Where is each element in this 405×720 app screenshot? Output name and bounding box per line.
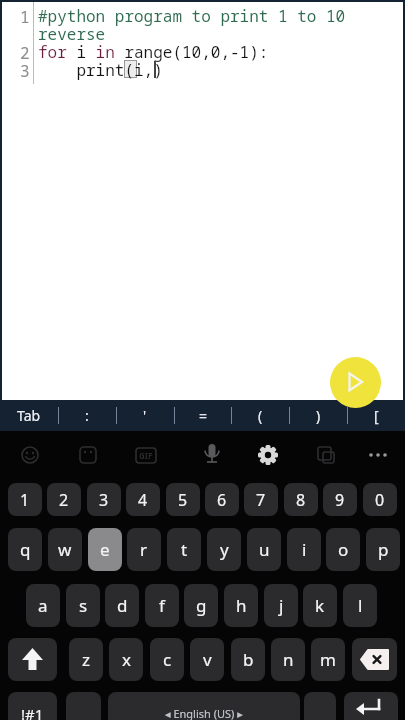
button[interactable] bbox=[364, 441, 392, 469]
button[interactable] bbox=[344, 692, 398, 720]
button[interactable]: 1 bbox=[0, 0, 405, 400]
button[interactable]: w bbox=[48, 528, 82, 571]
button[interactable]: x bbox=[109, 638, 143, 681]
staticText: 5 bbox=[178, 489, 188, 511]
staticText: r bbox=[140, 538, 148, 561]
staticText: b bbox=[243, 648, 254, 671]
button[interactable]: = bbox=[174, 400, 232, 431]
button[interactable]: : bbox=[58, 400, 116, 431]
button[interactable]: o bbox=[326, 528, 360, 571]
staticText: 7 bbox=[256, 489, 266, 511]
button[interactable]: i bbox=[287, 528, 321, 571]
button[interactable]: e bbox=[88, 528, 122, 571]
staticText: !#1 bbox=[21, 704, 44, 720]
staticText: f bbox=[159, 594, 165, 617]
button[interactable] bbox=[254, 441, 282, 469]
staticText: t bbox=[181, 538, 188, 561]
staticText: v bbox=[203, 648, 212, 671]
staticText: ◂ English (US) ▸ bbox=[165, 706, 243, 720]
staticText: print(i,) bbox=[38, 59, 163, 81]
staticText: 8 bbox=[296, 489, 306, 511]
button[interactable]: l bbox=[343, 584, 377, 627]
button[interactable]: f bbox=[145, 584, 179, 627]
staticText: l bbox=[358, 594, 363, 617]
button[interactable]: r bbox=[127, 528, 161, 571]
button[interactable]: ' bbox=[116, 400, 174, 431]
staticText: k bbox=[315, 594, 325, 617]
button[interactable]: h bbox=[224, 584, 258, 627]
staticText: m bbox=[320, 648, 336, 671]
button[interactable] bbox=[8, 638, 57, 681]
button[interactable]: s bbox=[66, 584, 100, 627]
button[interactable] bbox=[132, 441, 160, 469]
button[interactable]: 6 bbox=[205, 483, 239, 516]
button[interactable]: d bbox=[105, 584, 139, 627]
button[interactable] bbox=[16, 441, 44, 469]
staticText: 1 bbox=[20, 489, 30, 511]
button[interactable]: 7 bbox=[244, 483, 278, 516]
staticText: y bbox=[220, 538, 229, 561]
staticText: [ bbox=[374, 406, 379, 425]
button[interactable]: ) bbox=[289, 400, 347, 431]
staticText: ' bbox=[143, 406, 147, 425]
staticText: j bbox=[279, 594, 284, 617]
button[interactable] bbox=[304, 692, 336, 720]
button[interactable] bbox=[66, 692, 101, 720]
staticText: z bbox=[82, 648, 90, 671]
button[interactable]: z bbox=[69, 638, 103, 681]
staticText: 4 bbox=[138, 489, 148, 511]
button[interactable]: 1 bbox=[8, 483, 42, 516]
button[interactable]: v bbox=[190, 638, 224, 681]
button[interactable]: k bbox=[303, 584, 337, 627]
button[interactable]: 2 bbox=[47, 483, 81, 516]
staticText: #python program to print 1 to 10 bbox=[38, 5, 346, 27]
staticText: h bbox=[236, 594, 247, 617]
staticText: e bbox=[100, 538, 110, 561]
button[interactable]: t bbox=[167, 528, 201, 571]
staticText: 0 bbox=[375, 489, 385, 511]
button[interactable] bbox=[352, 638, 397, 681]
staticText: GIF bbox=[139, 450, 153, 461]
button[interactable]: 8 bbox=[284, 483, 318, 516]
staticText: g bbox=[196, 594, 207, 617]
button[interactable]: 0 bbox=[363, 483, 397, 516]
button[interactable]: g bbox=[184, 584, 218, 627]
staticText: x bbox=[122, 648, 131, 671]
staticText: u bbox=[259, 538, 270, 561]
staticText: 9 bbox=[335, 489, 345, 511]
staticText: 2 bbox=[59, 489, 69, 511]
staticText: 2 bbox=[20, 42, 30, 64]
button[interactable]: 9 bbox=[323, 483, 357, 516]
button[interactable]: y bbox=[207, 528, 241, 571]
button[interactable]: q bbox=[8, 528, 42, 571]
button[interactable]: 5 bbox=[166, 483, 200, 516]
button[interactable]: m bbox=[311, 638, 345, 681]
button[interactable]: Tab bbox=[0, 400, 58, 431]
button[interactable]: a bbox=[26, 584, 60, 627]
button[interactable]: j bbox=[264, 584, 298, 627]
button[interactable] bbox=[312, 441, 340, 469]
button[interactable] bbox=[198, 441, 226, 469]
staticText: Tab bbox=[17, 406, 41, 425]
staticText: 3 bbox=[99, 489, 109, 511]
button[interactable]: !#1 bbox=[8, 692, 57, 720]
staticText: reverse bbox=[38, 23, 106, 45]
button[interactable]: [ bbox=[347, 400, 405, 431]
button[interactable]: b bbox=[231, 638, 265, 681]
button[interactable] bbox=[74, 441, 102, 469]
button[interactable]: p bbox=[366, 528, 400, 571]
staticText: : bbox=[85, 406, 89, 425]
staticText: = bbox=[199, 406, 208, 425]
button[interactable] bbox=[330, 357, 381, 408]
button[interactable]: c bbox=[150, 638, 184, 681]
button[interactable]: 3 bbox=[87, 483, 121, 516]
button[interactable]: ( bbox=[231, 400, 289, 431]
button[interactable]: n bbox=[271, 638, 305, 681]
staticText: for i in range(10,0,-1): bbox=[38, 41, 269, 63]
button[interactable]: ◂ English (US) ▸ bbox=[108, 692, 300, 720]
staticText: 1 bbox=[20, 6, 30, 28]
staticText: 3 bbox=[20, 60, 30, 82]
staticText: a bbox=[38, 594, 48, 617]
button[interactable]: 4 bbox=[126, 483, 160, 516]
button[interactable]: u bbox=[247, 528, 281, 571]
